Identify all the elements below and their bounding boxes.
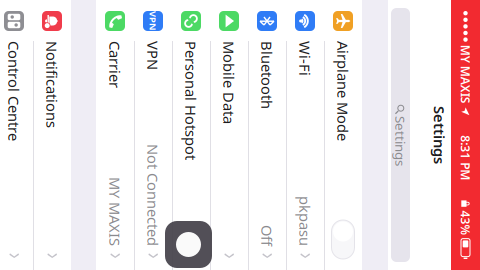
staticText: Personal Hotspot <box>146 174 265 194</box>
staticText: MY MAXIS <box>282 250 351 270</box>
staticText: Mobile Data <box>146 136 229 156</box>
button[interactable]: VPN <box>105 203 375 241</box>
button[interactable]: AssistiveTouch <box>326 163 373 210</box>
staticText: Wi-Fi <box>146 60 181 80</box>
staticText: Carrier <box>146 250 193 270</box>
staticText: pkpasu <box>301 60 351 80</box>
button[interactable]: Mobile Data <box>105 127 375 165</box>
staticText: Off <box>330 98 351 118</box>
staticText: Airplane Mode <box>146 22 246 42</box>
staticText: Not Connected <box>249 212 351 232</box>
staticText: VPN <box>116 216 136 228</box>
staticText: Bluetooth <box>146 98 214 118</box>
button[interactable]: Bluetooth <box>105 89 375 127</box>
button[interactable]: Wi-Fi <box>105 51 375 89</box>
button[interactable]: Airplane Mode <box>105 13 375 51</box>
button[interactable]: Carrier <box>105 241 375 270</box>
button[interactable]: Personal Hotspot <box>105 165 375 203</box>
staticText: VPN <box>146 212 175 232</box>
